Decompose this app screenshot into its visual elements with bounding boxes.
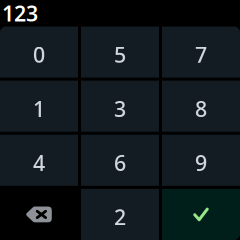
button[interactable]: 7 <box>162 26 240 78</box>
button[interactable]: 0 <box>0 26 78 78</box>
staticText: 123 <box>2 0 38 27</box>
staticText: 9 <box>195 149 207 177</box>
button[interactable]: 3 <box>81 81 159 132</box>
button[interactable]: 5 <box>81 26 159 78</box>
button[interactable]: 1 <box>0 81 78 132</box>
staticText: 4 <box>33 149 45 177</box>
staticText: 0 <box>33 40 45 69</box>
staticText: 8 <box>195 94 207 123</box>
staticText: 6 <box>114 149 126 177</box>
button[interactable]: 9 <box>162 135 240 186</box>
staticText: 7 <box>195 40 207 69</box>
staticText: 2 <box>114 203 126 231</box>
button[interactable]: 6 <box>81 135 159 186</box>
button[interactable]: Confirm <box>162 189 240 240</box>
button[interactable]: 2 <box>81 189 159 240</box>
staticText: 3 <box>114 94 126 123</box>
staticText: 1 <box>33 94 45 123</box>
staticText: 5 <box>114 40 126 69</box>
button[interactable]: Delete <box>0 189 78 240</box>
button[interactable]: 8 <box>162 81 240 132</box>
button[interactable]: 4 <box>0 135 78 186</box>
